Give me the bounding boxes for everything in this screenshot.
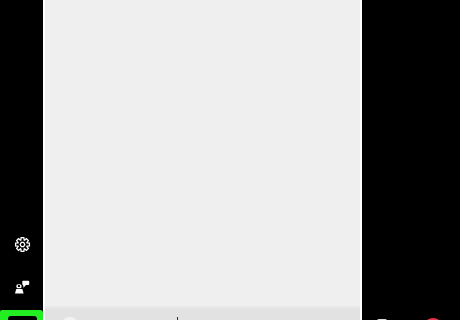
button[interactable]: Settings — [4, 226, 40, 262]
button[interactable]: Record — [423, 318, 443, 320]
button[interactable]: Support — [4, 270, 40, 306]
button[interactable]: Start broadcast — [0, 310, 43, 320]
button[interactable]: Gallery — [377, 319, 387, 320]
